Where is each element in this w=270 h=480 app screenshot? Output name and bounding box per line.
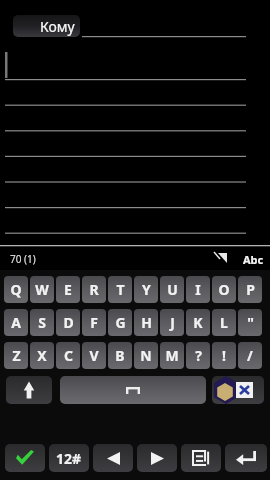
button[interactable]: / xyxy=(238,342,262,369)
staticText: R xyxy=(89,280,99,299)
button[interactable]: N xyxy=(134,342,158,369)
staticText: E xyxy=(64,280,72,299)
staticText: U xyxy=(167,280,178,299)
staticText: C xyxy=(64,346,73,365)
button[interactable]: G xyxy=(108,309,132,336)
staticText: S xyxy=(38,313,46,332)
button[interactable]: Move cursor left xyxy=(93,444,133,472)
button[interactable]: Confirm xyxy=(5,444,45,472)
staticText: J xyxy=(170,313,175,332)
button[interactable]: E xyxy=(56,276,80,303)
button[interactable]: Z xyxy=(4,342,28,369)
button[interactable]: K xyxy=(186,309,210,336)
staticText: N xyxy=(140,346,152,365)
staticText: B xyxy=(115,346,125,365)
staticText: D xyxy=(63,313,74,332)
button[interactable]: Enter xyxy=(225,444,267,472)
staticText: K xyxy=(193,313,203,332)
button[interactable]: I xyxy=(186,276,210,303)
staticText: G xyxy=(115,313,126,332)
staticText: Z xyxy=(12,346,21,365)
button[interactable]: U xyxy=(160,276,184,303)
staticText: Q xyxy=(10,280,22,299)
button[interactable]: D xyxy=(56,309,80,336)
staticText: I xyxy=(195,280,201,299)
button[interactable]: Q xyxy=(4,276,28,303)
staticText: Y xyxy=(142,280,151,299)
button[interactable]: A xyxy=(4,309,28,336)
staticText: Abc xyxy=(243,252,264,267)
button[interactable]: J xyxy=(160,309,184,336)
button[interactable]: T xyxy=(108,276,132,303)
button[interactable]: P xyxy=(238,276,262,303)
staticText: A xyxy=(11,313,21,332)
button[interactable]: Move cursor right xyxy=(137,444,177,472)
staticText: O xyxy=(218,280,230,299)
button[interactable]: F xyxy=(82,309,106,336)
staticText: 70 (1) xyxy=(10,252,36,266)
button[interactable]: " xyxy=(238,309,262,336)
button[interactable]: Space xyxy=(60,376,206,404)
staticText: W xyxy=(35,280,49,299)
staticText: F xyxy=(90,313,98,332)
staticText: ! xyxy=(222,346,226,365)
button[interactable]: Кому xyxy=(13,15,80,37)
staticText: / xyxy=(247,346,253,365)
button[interactable]: S xyxy=(30,309,54,336)
button[interactable]: V xyxy=(82,342,106,369)
button[interactable]: R xyxy=(82,276,106,303)
staticText: T xyxy=(116,280,125,299)
button[interactable]: L xyxy=(212,309,236,336)
staticText: ? xyxy=(195,346,202,365)
staticText: X xyxy=(37,346,47,365)
button[interactable]: Numbers and symbols xyxy=(49,444,89,472)
button[interactable]: B xyxy=(108,342,132,369)
button[interactable]: Y xyxy=(134,276,158,303)
staticText: L xyxy=(220,313,228,332)
button[interactable]: H xyxy=(134,309,158,336)
button[interactable]: X xyxy=(30,342,54,369)
staticText: Кому xyxy=(40,17,75,36)
staticText: 12# xyxy=(56,449,82,468)
button[interactable]: Backspace xyxy=(212,376,264,404)
button[interactable]: Shift xyxy=(6,376,52,404)
button[interactable]: Options menu xyxy=(181,444,221,472)
staticText: P xyxy=(246,280,255,299)
button[interactable]: ! xyxy=(212,342,236,369)
staticText: " xyxy=(247,313,254,332)
button[interactable]: ? xyxy=(186,342,210,369)
button[interactable]: O xyxy=(212,276,236,303)
button[interactable]: W xyxy=(30,276,54,303)
staticText: H xyxy=(141,313,152,332)
staticText: M xyxy=(165,346,179,365)
button[interactable]: C xyxy=(56,342,80,369)
staticText: V xyxy=(89,346,99,365)
button[interactable]: M xyxy=(160,342,184,369)
